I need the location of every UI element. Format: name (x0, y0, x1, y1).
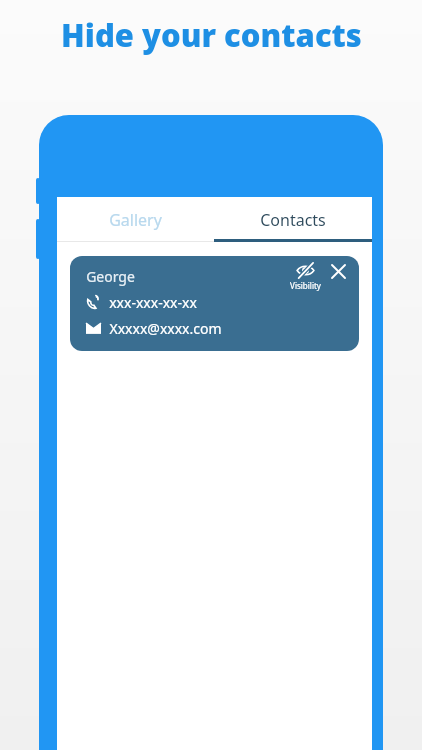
button[interactable]: Contacts (214, 197, 372, 242)
staticText: Contacts (260, 209, 326, 231)
staticText: Xxxxx@xxxx.com (109, 319, 222, 338)
staticText: Gallery (109, 209, 162, 231)
button[interactable]: George (70, 256, 359, 351)
button[interactable]: Gallery (57, 197, 214, 242)
staticText: Hide your contacts (61, 14, 362, 56)
staticText: xxx-xxx-xx-xx (109, 293, 197, 312)
staticText: George (86, 267, 135, 286)
staticText: Visibility (290, 280, 321, 291)
button[interactable]: Close (329, 262, 347, 280)
button[interactable]: Visibility (290, 261, 321, 291)
